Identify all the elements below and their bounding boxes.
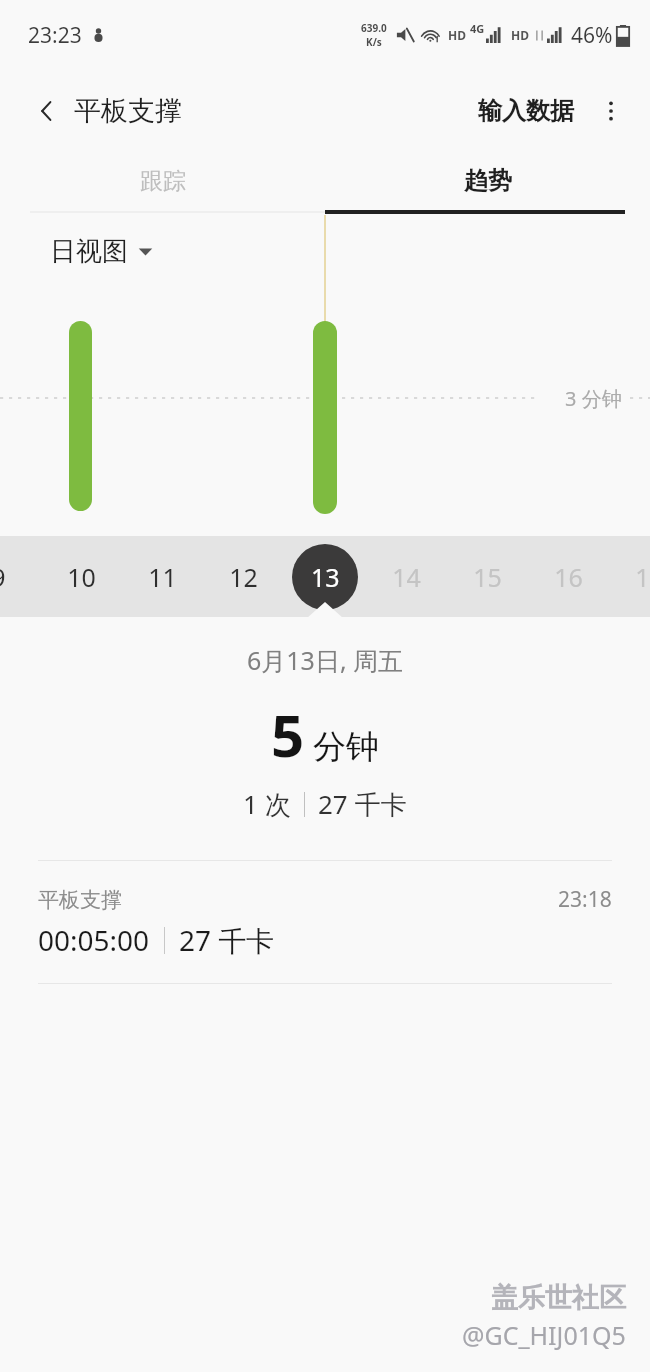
staticText: 分钟 bbox=[313, 726, 379, 768]
staticText: 输入数据 bbox=[478, 96, 574, 126]
staticText: 平板支撑 bbox=[74, 94, 182, 128]
staticText: 日视图 bbox=[50, 235, 128, 268]
staticText: 639.0 bbox=[361, 21, 387, 35]
staticText: 4G bbox=[470, 21, 485, 36]
staticText: 12 bbox=[229, 560, 258, 594]
staticText: 9 bbox=[0, 560, 6, 594]
staticText: 平板支撑 bbox=[38, 887, 122, 913]
button[interactable]: 趋势 bbox=[325, 152, 650, 210]
button[interactable]: 平板支撑 bbox=[0, 861, 650, 983]
button[interactable]: 13 bbox=[289, 541, 361, 613]
button[interactable]: 10 bbox=[49, 536, 113, 617]
button[interactable]: More options bbox=[592, 92, 630, 130]
staticText: 23:18 bbox=[558, 885, 612, 914]
staticText: 13 bbox=[311, 560, 340, 594]
button[interactable]: 11 bbox=[130, 536, 194, 617]
staticText: 27 千卡 bbox=[318, 786, 407, 822]
button[interactable]: Back bbox=[28, 92, 66, 130]
staticText: 3 分钟 bbox=[565, 385, 622, 412]
staticText: 46% bbox=[571, 21, 613, 50]
staticText: 17 bbox=[635, 560, 650, 594]
staticText: 15 bbox=[473, 560, 502, 594]
staticText: HD bbox=[448, 27, 466, 43]
staticText: 6月13日, 周五 bbox=[247, 643, 404, 677]
staticText: 1 次 bbox=[243, 786, 291, 822]
staticText: @GC_HIJ01Q5 bbox=[462, 1318, 626, 1352]
staticText: 5 bbox=[271, 695, 305, 774]
staticText: 盖乐世社区 bbox=[491, 1281, 626, 1315]
staticText: 11 bbox=[148, 560, 177, 594]
button[interactable]: 9 bbox=[0, 536, 30, 617]
staticText: K/s bbox=[366, 35, 382, 49]
staticText: 跟踪 bbox=[140, 167, 186, 196]
button[interactable]: 16 bbox=[536, 536, 600, 617]
staticText: 27 千卡 bbox=[179, 921, 275, 959]
button[interactable]: 日视图 bbox=[50, 235, 153, 268]
staticText: 00:05:00 bbox=[38, 921, 150, 959]
button[interactable]: 15 bbox=[455, 536, 519, 617]
staticText: 趋势 bbox=[464, 166, 512, 196]
button[interactable]: 17 bbox=[617, 536, 650, 617]
staticText: 10 bbox=[67, 560, 96, 594]
staticText: HD bbox=[511, 27, 529, 43]
button[interactable]: 14 bbox=[374, 536, 438, 617]
button[interactable]: 12 bbox=[211, 536, 275, 617]
button[interactable]: 输入数据 bbox=[470, 86, 582, 136]
staticText: 23:23 bbox=[28, 21, 82, 50]
button[interactable]: 跟踪 bbox=[0, 152, 325, 210]
staticText: 14 bbox=[392, 560, 421, 594]
staticText: 16 bbox=[554, 560, 583, 594]
